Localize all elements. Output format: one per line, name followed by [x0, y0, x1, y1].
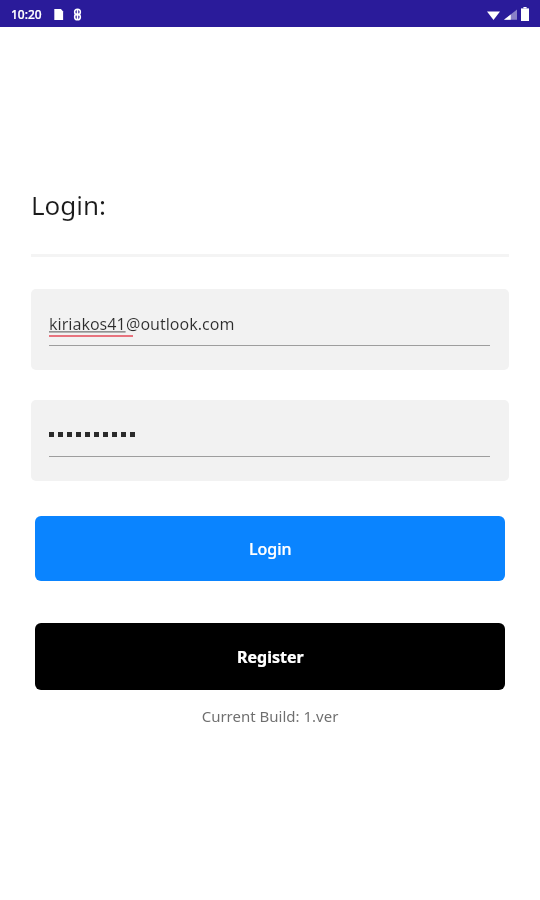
- staticText: 10:20: [11, 6, 42, 22]
- staticText: Login:: [31, 187, 107, 222]
- staticText: Current Build: 1.ver: [0, 706, 540, 726]
- staticText: Register: [237, 646, 304, 668]
- button[interactable]: [31, 400, 509, 481]
- button[interactable]: Register: [35, 623, 505, 690]
- button[interactable]: kiriakos41: [31, 289, 509, 370]
- staticText: @outlook.com: [126, 313, 235, 335]
- staticText: Login: [249, 538, 292, 560]
- staticText: kiriakos41: [49, 313, 126, 335]
- button[interactable]: Login: [35, 516, 505, 581]
